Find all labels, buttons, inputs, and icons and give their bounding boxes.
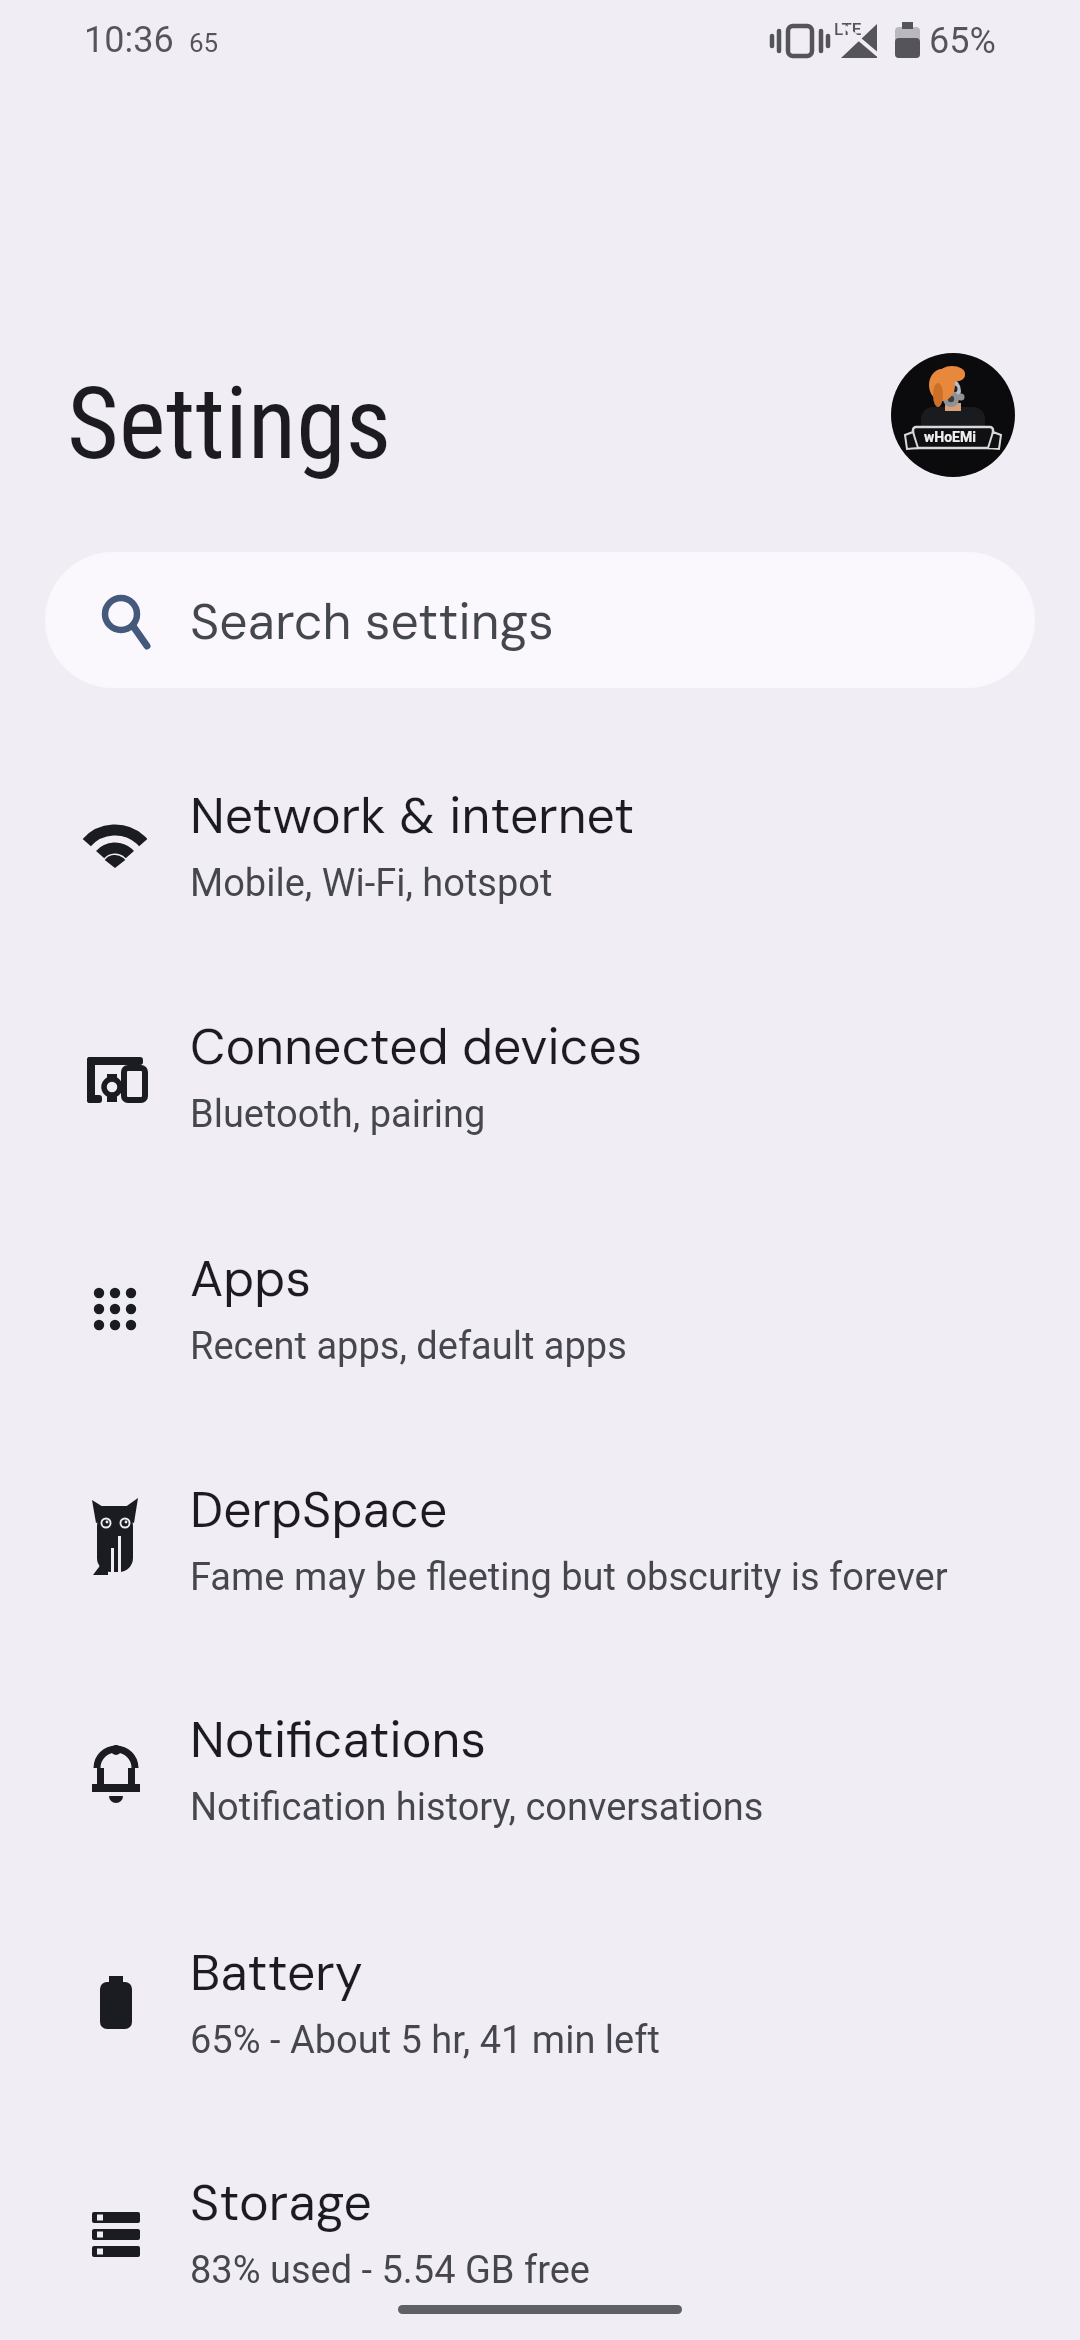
button[interactable]: Battery	[0, 1892, 1080, 2123]
staticText: 65	[189, 28, 219, 58]
staticText: Battery	[190, 1940, 363, 2005]
staticText: 10:36	[84, 19, 174, 61]
staticText: Network & internet	[190, 783, 635, 848]
button[interactable]: Network & internet	[0, 735, 1080, 966]
staticText: Search settings	[190, 589, 554, 654]
staticText: Recent apps, default apps	[190, 1324, 627, 1369]
button[interactable]: Storage	[0, 2122, 1080, 2340]
staticText: wHoEMi	[924, 429, 976, 445]
button[interactable]: wHoEMi	[891, 353, 1015, 477]
staticText: Fame may be fleeting but obscurity is fo…	[190, 1555, 948, 1600]
staticText: Settings	[67, 365, 392, 482]
staticText: Apps	[190, 1246, 311, 1311]
staticText: Notification history, conversations	[190, 1785, 764, 1830]
staticText: Storage	[190, 2170, 372, 2235]
button[interactable]: Connected devices	[0, 966, 1080, 1197]
staticText: 83% used - 5.54 GB free	[190, 2248, 591, 2293]
staticText: Mobile, Wi-Fi, hotspot	[190, 861, 553, 906]
staticText: LTE	[834, 19, 862, 39]
button[interactable]: Apps	[0, 1198, 1080, 1429]
staticText: Connected devices	[190, 1014, 643, 1079]
staticText: Bluetooth, pairing	[190, 1092, 486, 1137]
staticText: 65% - About 5 hr, 41 min left	[190, 2018, 660, 2063]
staticText: 65%	[929, 20, 996, 62]
button[interactable]: Search settings	[45, 552, 1035, 688]
button[interactable]: Notifications	[0, 1659, 1080, 1890]
button[interactable]: DerpSpace	[0, 1429, 1080, 1660]
staticText: Notifications	[190, 1707, 486, 1772]
staticText: DerpSpace	[190, 1477, 448, 1542]
